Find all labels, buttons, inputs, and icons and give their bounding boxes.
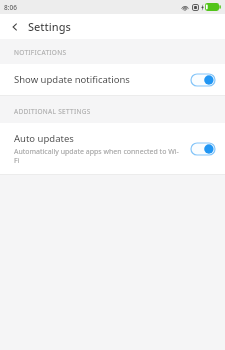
- staticText: Automatically update apps when connected…: [14, 147, 183, 165]
- button[interactable]: Back: [6, 18, 24, 36]
- button[interactable]: Auto updates: [0, 123, 225, 174]
- staticText: 8:06: [4, 3, 17, 12]
- staticText: Settings: [28, 19, 71, 34]
- button[interactable]: Toggle: [191, 74, 215, 86]
- staticText: ADDITIONAL SETTINGS: [14, 107, 91, 116]
- button[interactable]: Toggle: [191, 143, 215, 155]
- staticText: Auto updates: [14, 132, 74, 145]
- staticText: Show update notifications: [14, 73, 130, 86]
- button[interactable]: Show update notifications: [0, 64, 225, 95]
- staticText: NOTIFICATIONS: [14, 48, 67, 57]
